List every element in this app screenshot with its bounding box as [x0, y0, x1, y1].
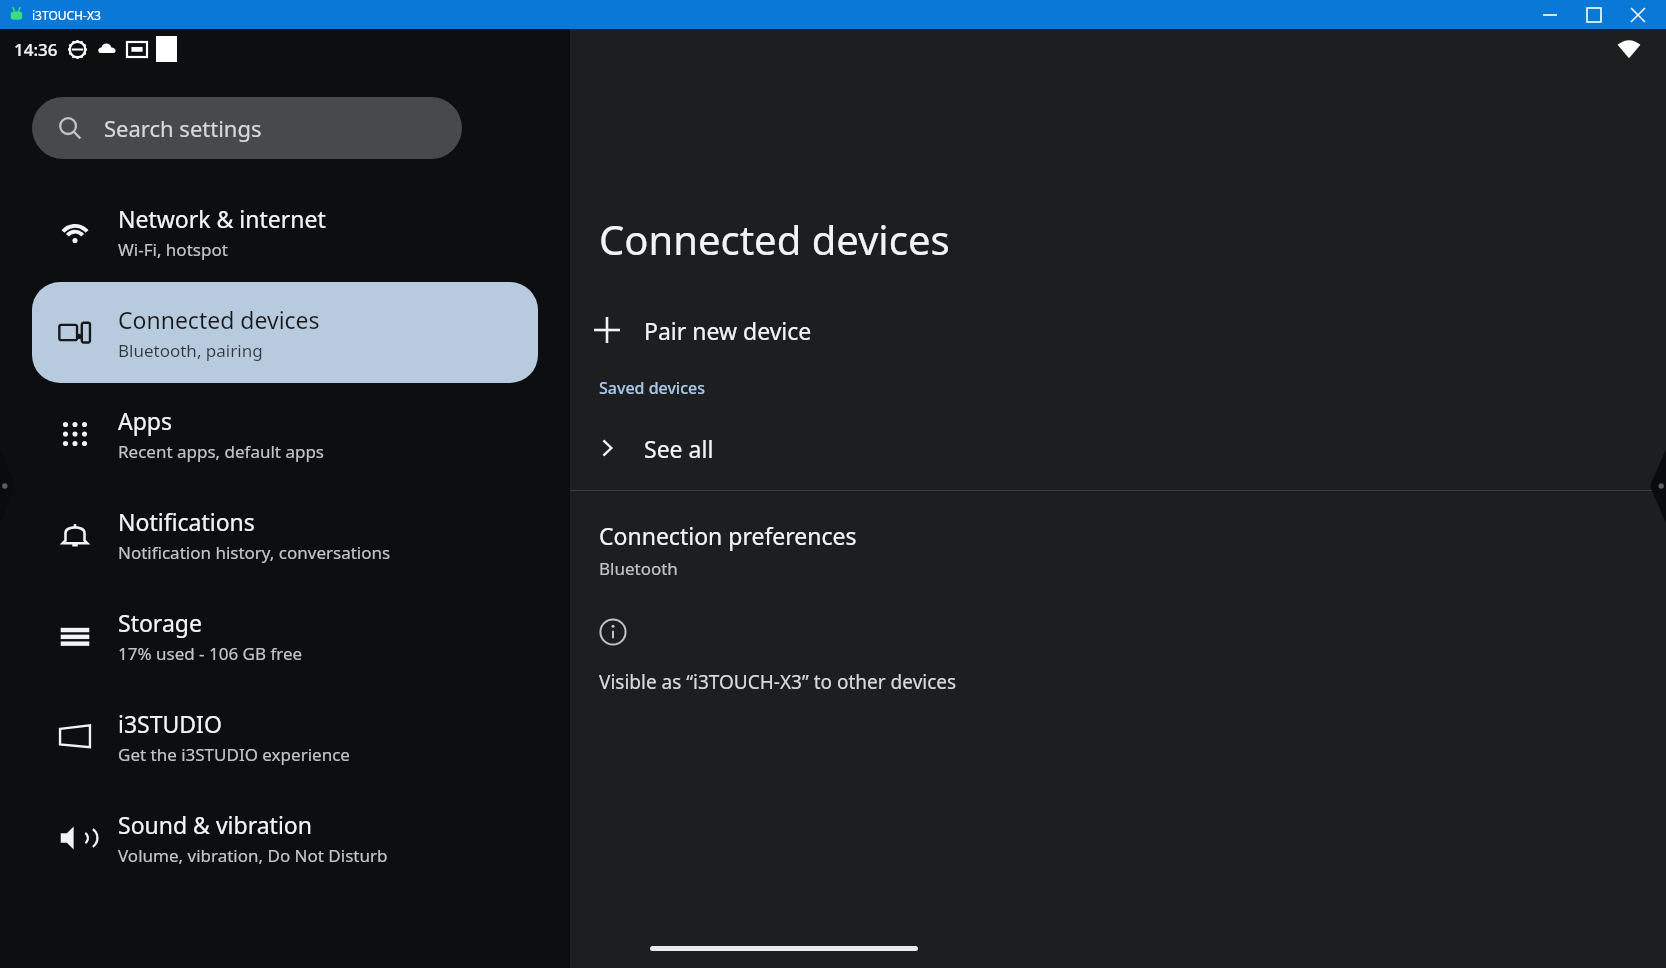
staticText: 17% used - 106 GB free — [118, 642, 303, 665]
button[interactable]: Search settings — [32, 97, 462, 159]
staticText: Saved devices — [599, 377, 706, 399]
staticText: Connected devices — [599, 212, 950, 266]
staticText: Sound & vibration — [118, 809, 312, 840]
staticText: Recent apps, default apps — [118, 440, 325, 463]
button[interactable]: Sound & vibration — [32, 787, 538, 888]
staticText: Volume, vibration, Do Not Disturb — [118, 844, 388, 867]
button[interactable]: Apps — [32, 383, 538, 484]
staticText: Bluetooth, pairing — [118, 339, 263, 362]
staticText: Pair new device — [644, 315, 812, 346]
staticText: See all — [644, 433, 714, 464]
button[interactable]: Expand left — [0, 449, 16, 523]
button[interactable]: See all — [570, 419, 1666, 477]
staticText: Notifications — [118, 506, 255, 537]
staticText: Connection preferences — [599, 520, 857, 551]
button[interactable]: Minimize — [1528, 0, 1572, 29]
button[interactable]: Close — [1616, 0, 1660, 29]
staticText: Apps — [118, 405, 173, 436]
staticText: i3TOUCH-X3 — [32, 7, 101, 23]
button[interactable]: Maximize — [1572, 0, 1616, 29]
staticText: Search settings — [104, 113, 262, 143]
button[interactable]: Pair new device — [570, 299, 1666, 361]
staticText: Notification history, conversations — [118, 541, 391, 564]
button[interactable]: Expand right — [1650, 449, 1666, 523]
button[interactable]: Notifications — [32, 484, 538, 585]
staticText: Bluetooth — [599, 557, 678, 580]
button[interactable]: i3STUDIO — [32, 686, 538, 787]
staticText: i3STUDIO — [118, 708, 222, 739]
staticText: Storage — [118, 607, 202, 638]
staticText: Network & internet — [118, 203, 326, 234]
staticText: Visible as “i3TOUCH-X3” to other devices — [599, 669, 957, 695]
staticText: 14:36 — [14, 38, 58, 61]
staticText: Connected devices — [118, 304, 320, 335]
staticText: Get the i3STUDIO experience — [118, 743, 350, 766]
button[interactable]: Network & internet — [32, 181, 538, 282]
staticText: Wi-Fi, hotspot — [118, 238, 228, 261]
button[interactable]: Storage — [32, 585, 538, 686]
button[interactable]: Connected devices — [32, 282, 538, 383]
